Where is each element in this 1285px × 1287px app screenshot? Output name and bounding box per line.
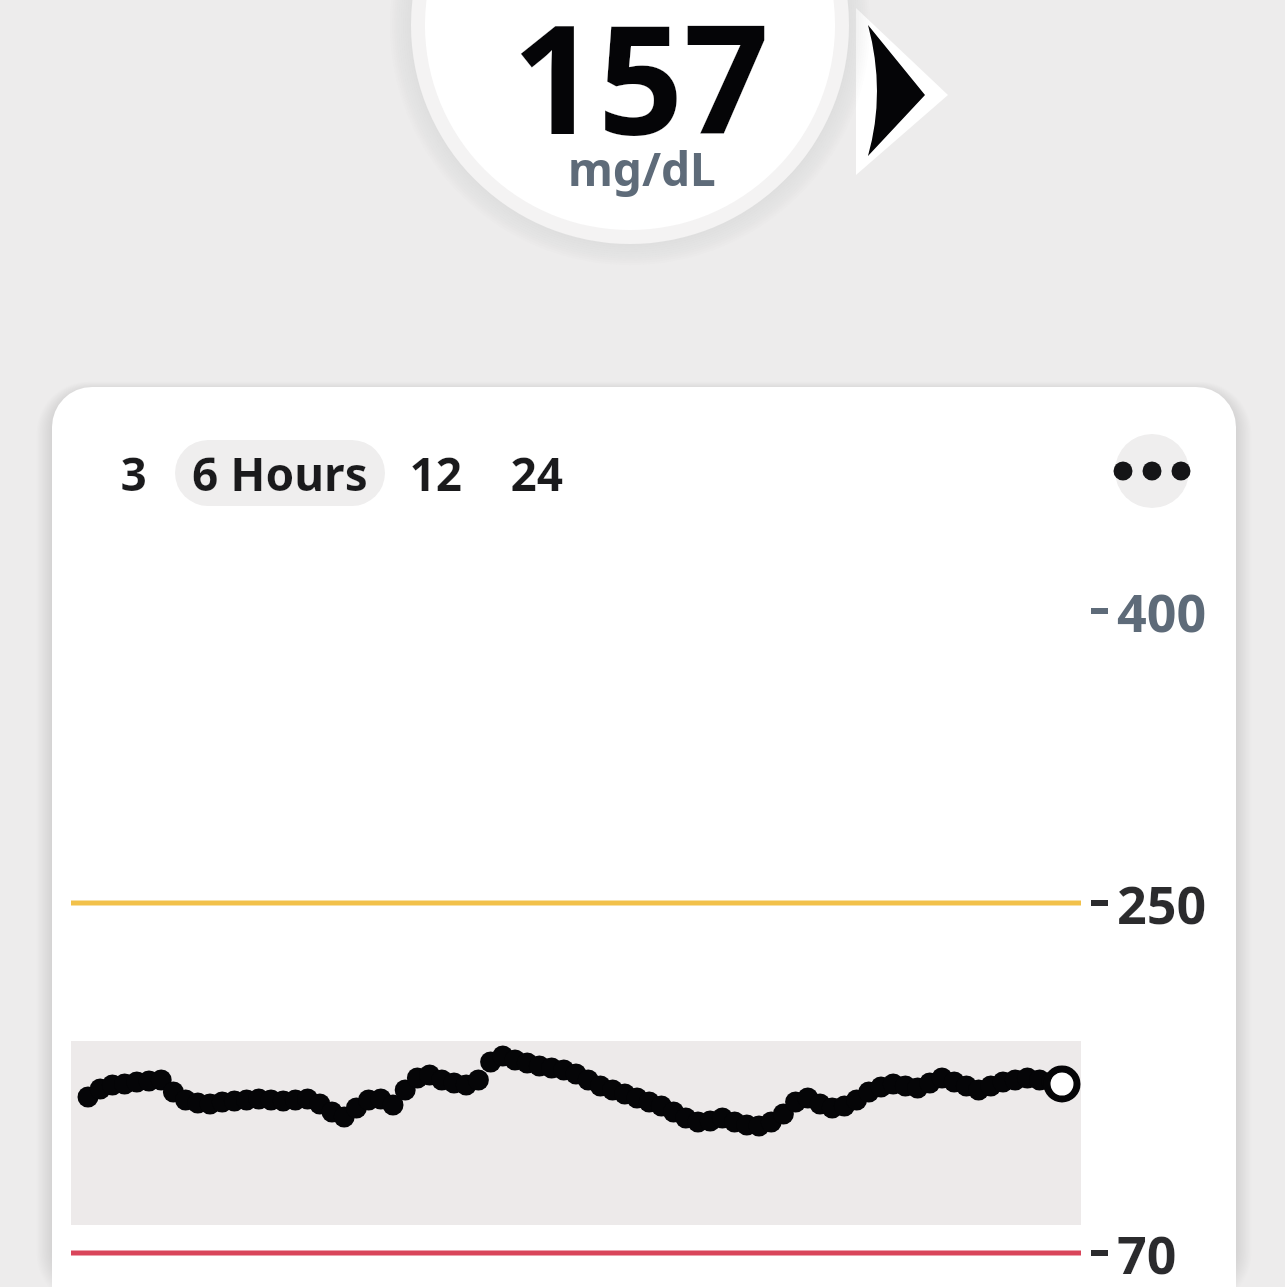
button[interactable]: 12 hours [400, 436, 476, 508]
button[interactable]: 6 Hours, selected [175, 438, 385, 506]
button[interactable]: Trend steady [845, 10, 950, 185]
button[interactable]: Current glucose 157 mg/dL [425, 0, 835, 230]
button[interactable]: More options [1115, 434, 1189, 508]
button[interactable]: 3 hours [108, 436, 166, 508]
button[interactable]: 24 hours [498, 436, 576, 508]
